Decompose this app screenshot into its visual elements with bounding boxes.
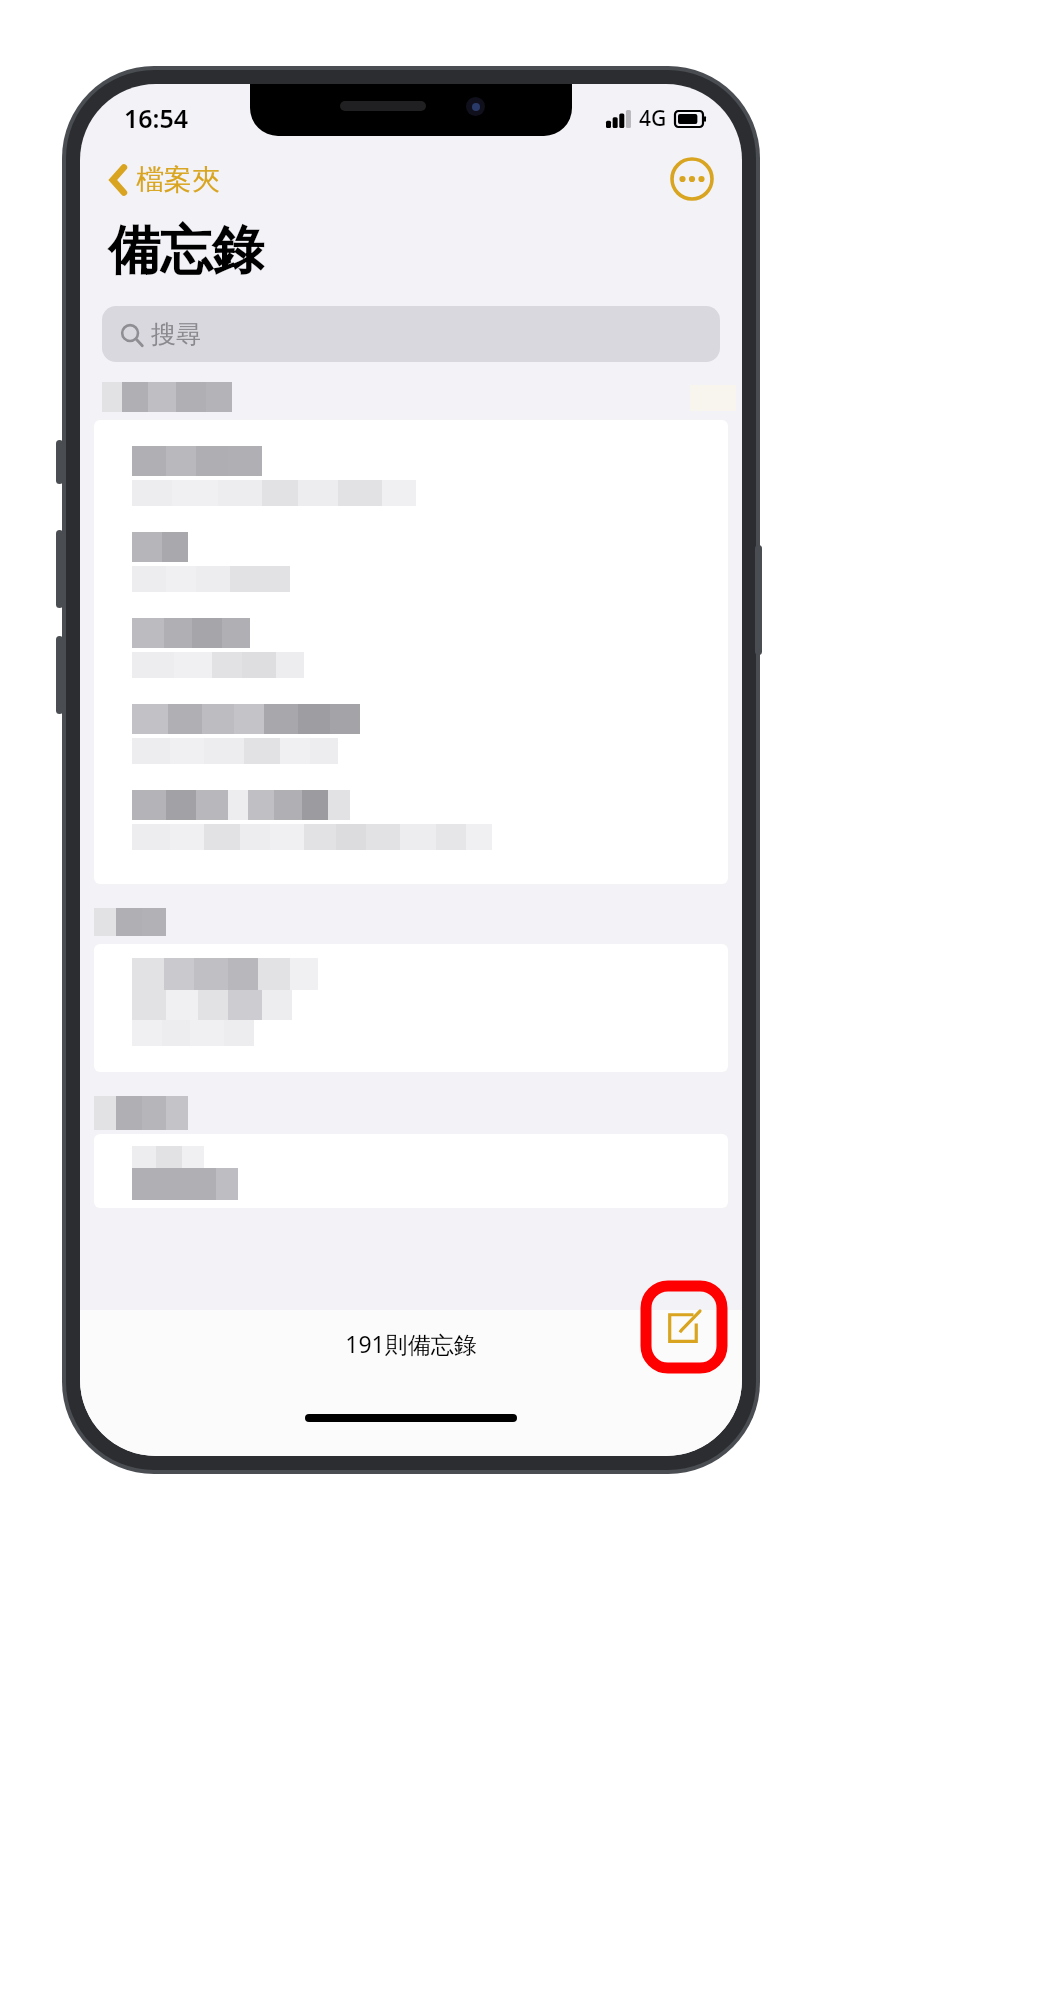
button[interactable] (94, 436, 728, 522)
staticText: 備忘錄 (108, 218, 264, 284)
button[interactable] (94, 522, 728, 608)
button[interactable]: 檔案夾 (102, 156, 228, 203)
button[interactable]: More options (670, 157, 714, 201)
staticText: 檔案夾 (136, 162, 220, 197)
staticText: 4G (639, 104, 667, 133)
button[interactable]: New note (644, 1284, 724, 1370)
staticText: 搜尋 (151, 319, 201, 350)
button[interactable] (94, 694, 728, 780)
button[interactable] (94, 780, 728, 866)
staticText: 191則備忘錄 (345, 1328, 477, 1359)
button[interactable] (94, 608, 728, 694)
staticText: 16:54 (124, 101, 189, 135)
button[interactable]: 搜尋 (102, 306, 720, 362)
